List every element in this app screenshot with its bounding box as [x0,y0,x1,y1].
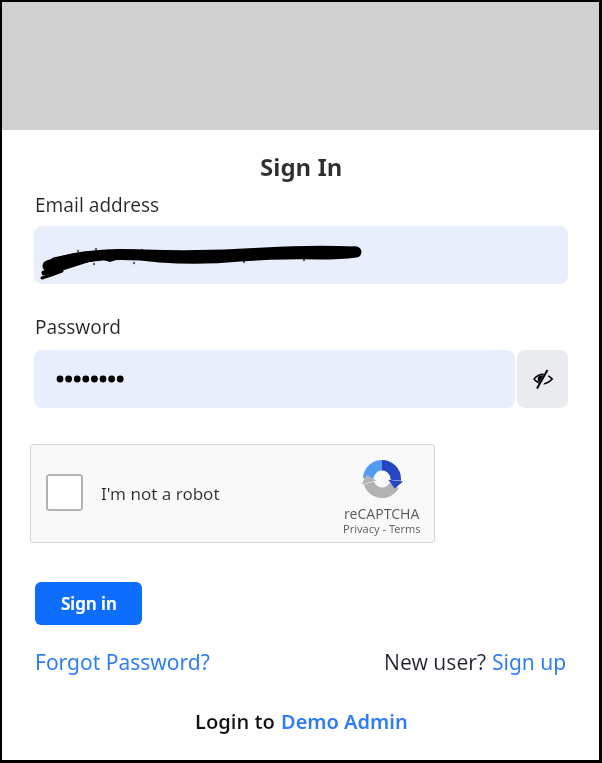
staticText: Login to [195,708,281,735]
staticText: Sign up [492,648,567,677]
button[interactable]: Forgot Password? [35,648,210,677]
staticText: Sign In [260,150,343,183]
staticText: New user? [384,648,492,677]
button[interactable]: Sign in [35,582,142,625]
button[interactable]: Demo Admin [281,708,408,735]
button[interactable]: Sign up [492,648,567,677]
button[interactable] [46,474,83,511]
staticText: reCAPTCHA [344,504,420,523]
staticText: Email address [35,192,160,218]
button[interactable] [30,444,435,543]
staticText: Demo Admin [281,708,408,735]
staticText: Password [35,314,121,340]
button[interactable] [34,226,568,284]
staticText: Privacy - Terms [343,521,421,536]
button[interactable] [517,350,568,408]
staticText: Sign in [61,592,117,615]
staticText: Forgot Password? [35,648,210,677]
staticText: I'm not a robot [101,482,220,505]
button[interactable] [34,350,515,408]
